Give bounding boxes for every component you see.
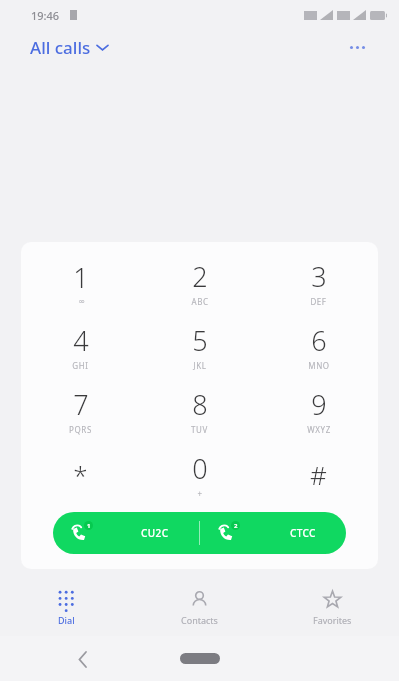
button[interactable]: 8 [140,378,259,442]
button[interactable]: 5 [140,314,259,378]
staticText: + [197,488,203,499]
staticText: 1 [87,522,91,530]
button[interactable]: Home [180,653,220,664]
staticText: JKL [193,360,207,371]
button[interactable]: Favorites [266,584,399,632]
button[interactable]: 9 [259,378,378,442]
staticText: 4 [73,322,89,359]
button[interactable]: All calls [26,34,112,61]
staticText: 0 [192,450,208,487]
button[interactable]: Contacts [133,584,266,632]
button[interactable]: More options [344,40,371,55]
staticText: TUV [191,424,208,435]
button[interactable]: 0 [140,442,259,506]
staticText: 6 [311,322,327,359]
staticText: Favorites [313,614,352,626]
button[interactable]: 2 [200,512,346,554]
staticText: CU2C [141,526,169,540]
staticText: 2 [192,258,208,295]
staticText: 19:46 [31,8,60,23]
button[interactable]: 1 [53,512,199,554]
staticText: DEF [310,296,327,307]
staticText: Contacts [181,614,218,626]
staticText: 2 [234,522,238,530]
button[interactable]: # [259,442,378,506]
button[interactable]: 6 [259,314,378,378]
staticText: 8 [192,386,208,423]
staticText: CTCC [290,526,316,540]
staticText: 5 [192,322,208,359]
button[interactable]: Dial [0,584,133,632]
staticText: Dial [58,614,75,626]
button[interactable]: 1 [21,250,140,314]
staticText: # [310,457,327,492]
button[interactable]: 4 [21,314,140,378]
staticText: MNO [308,360,330,371]
staticText: * [73,457,88,492]
button[interactable]: Back [70,646,96,672]
staticText: ABC [191,296,209,307]
button[interactable]: * [21,442,140,506]
staticText: PQRS [69,424,92,435]
staticText: 7 [73,386,89,423]
staticText: ∞ [78,297,85,306]
staticText: GHI [72,360,89,371]
staticText: 3 [311,258,327,295]
button[interactable]: 2 [140,250,259,314]
staticText: 1 [73,259,89,296]
button[interactable]: 3 [259,250,378,314]
staticText: WXYZ [307,424,331,435]
staticText: 9 [311,386,327,423]
button[interactable]: 7 [21,378,140,442]
staticText: All calls [30,36,91,59]
